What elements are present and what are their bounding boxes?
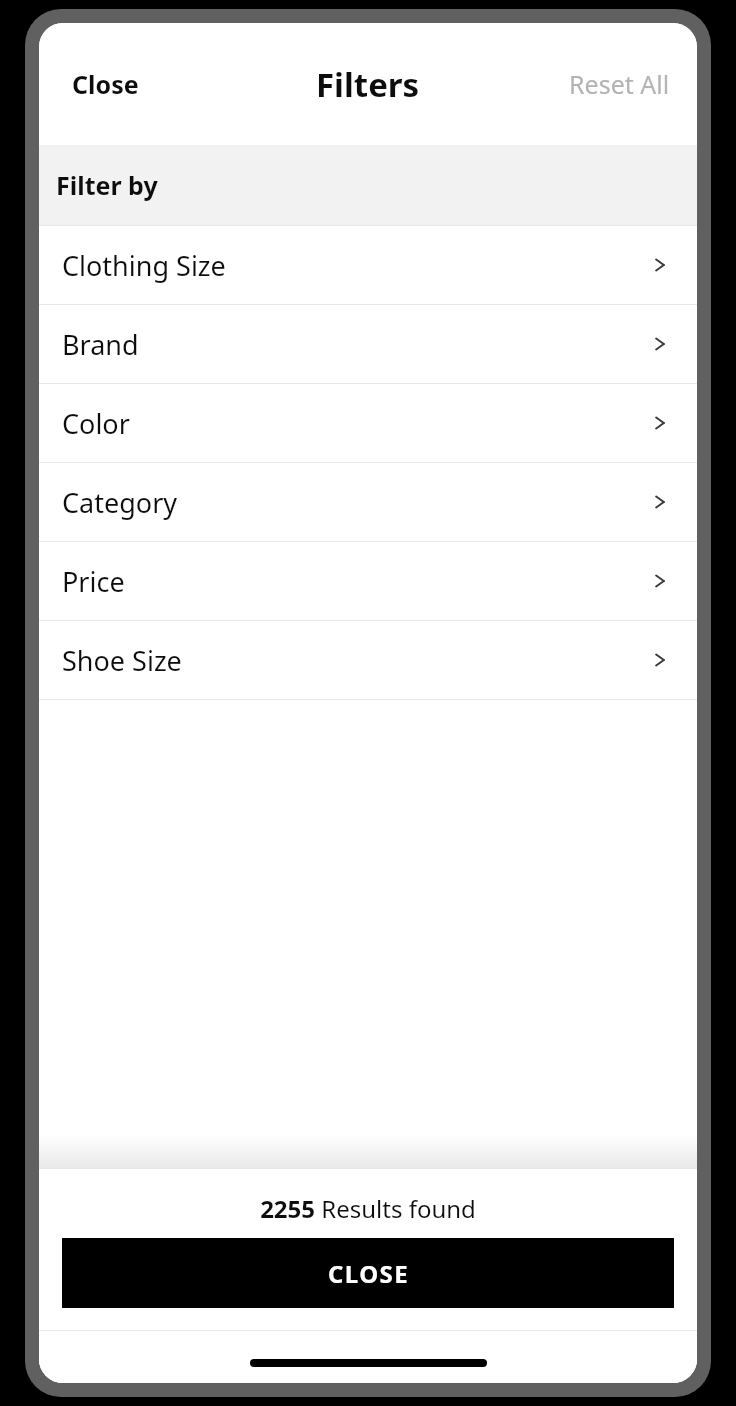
staticText: Shoe Size [62, 642, 182, 679]
button[interactable]: Brand [39, 305, 697, 384]
button[interactable]: Shoe Size [39, 621, 697, 700]
staticText: Close [72, 67, 139, 101]
button[interactable]: Close [62, 57, 149, 111]
staticText: Color [62, 405, 130, 442]
staticText: Brand [62, 326, 139, 363]
staticText: CLOSE [328, 1257, 409, 1290]
button[interactable]: Color [39, 384, 697, 463]
button[interactable]: Clothing Size [39, 226, 697, 305]
staticText: Filter by [56, 168, 158, 202]
button[interactable]: Category [39, 463, 697, 542]
staticText: Clothing Size [62, 247, 226, 284]
staticText: Category [62, 484, 178, 521]
staticText: Reset All [569, 67, 670, 101]
button[interactable]: CLOSE [62, 1238, 674, 1308]
button[interactable]: Price [39, 542, 697, 621]
button[interactable]: Reset All [559, 57, 680, 111]
staticText: Price [62, 563, 125, 600]
staticText: 2255 Results found [260, 1192, 476, 1225]
staticText: Filters [316, 62, 420, 107]
